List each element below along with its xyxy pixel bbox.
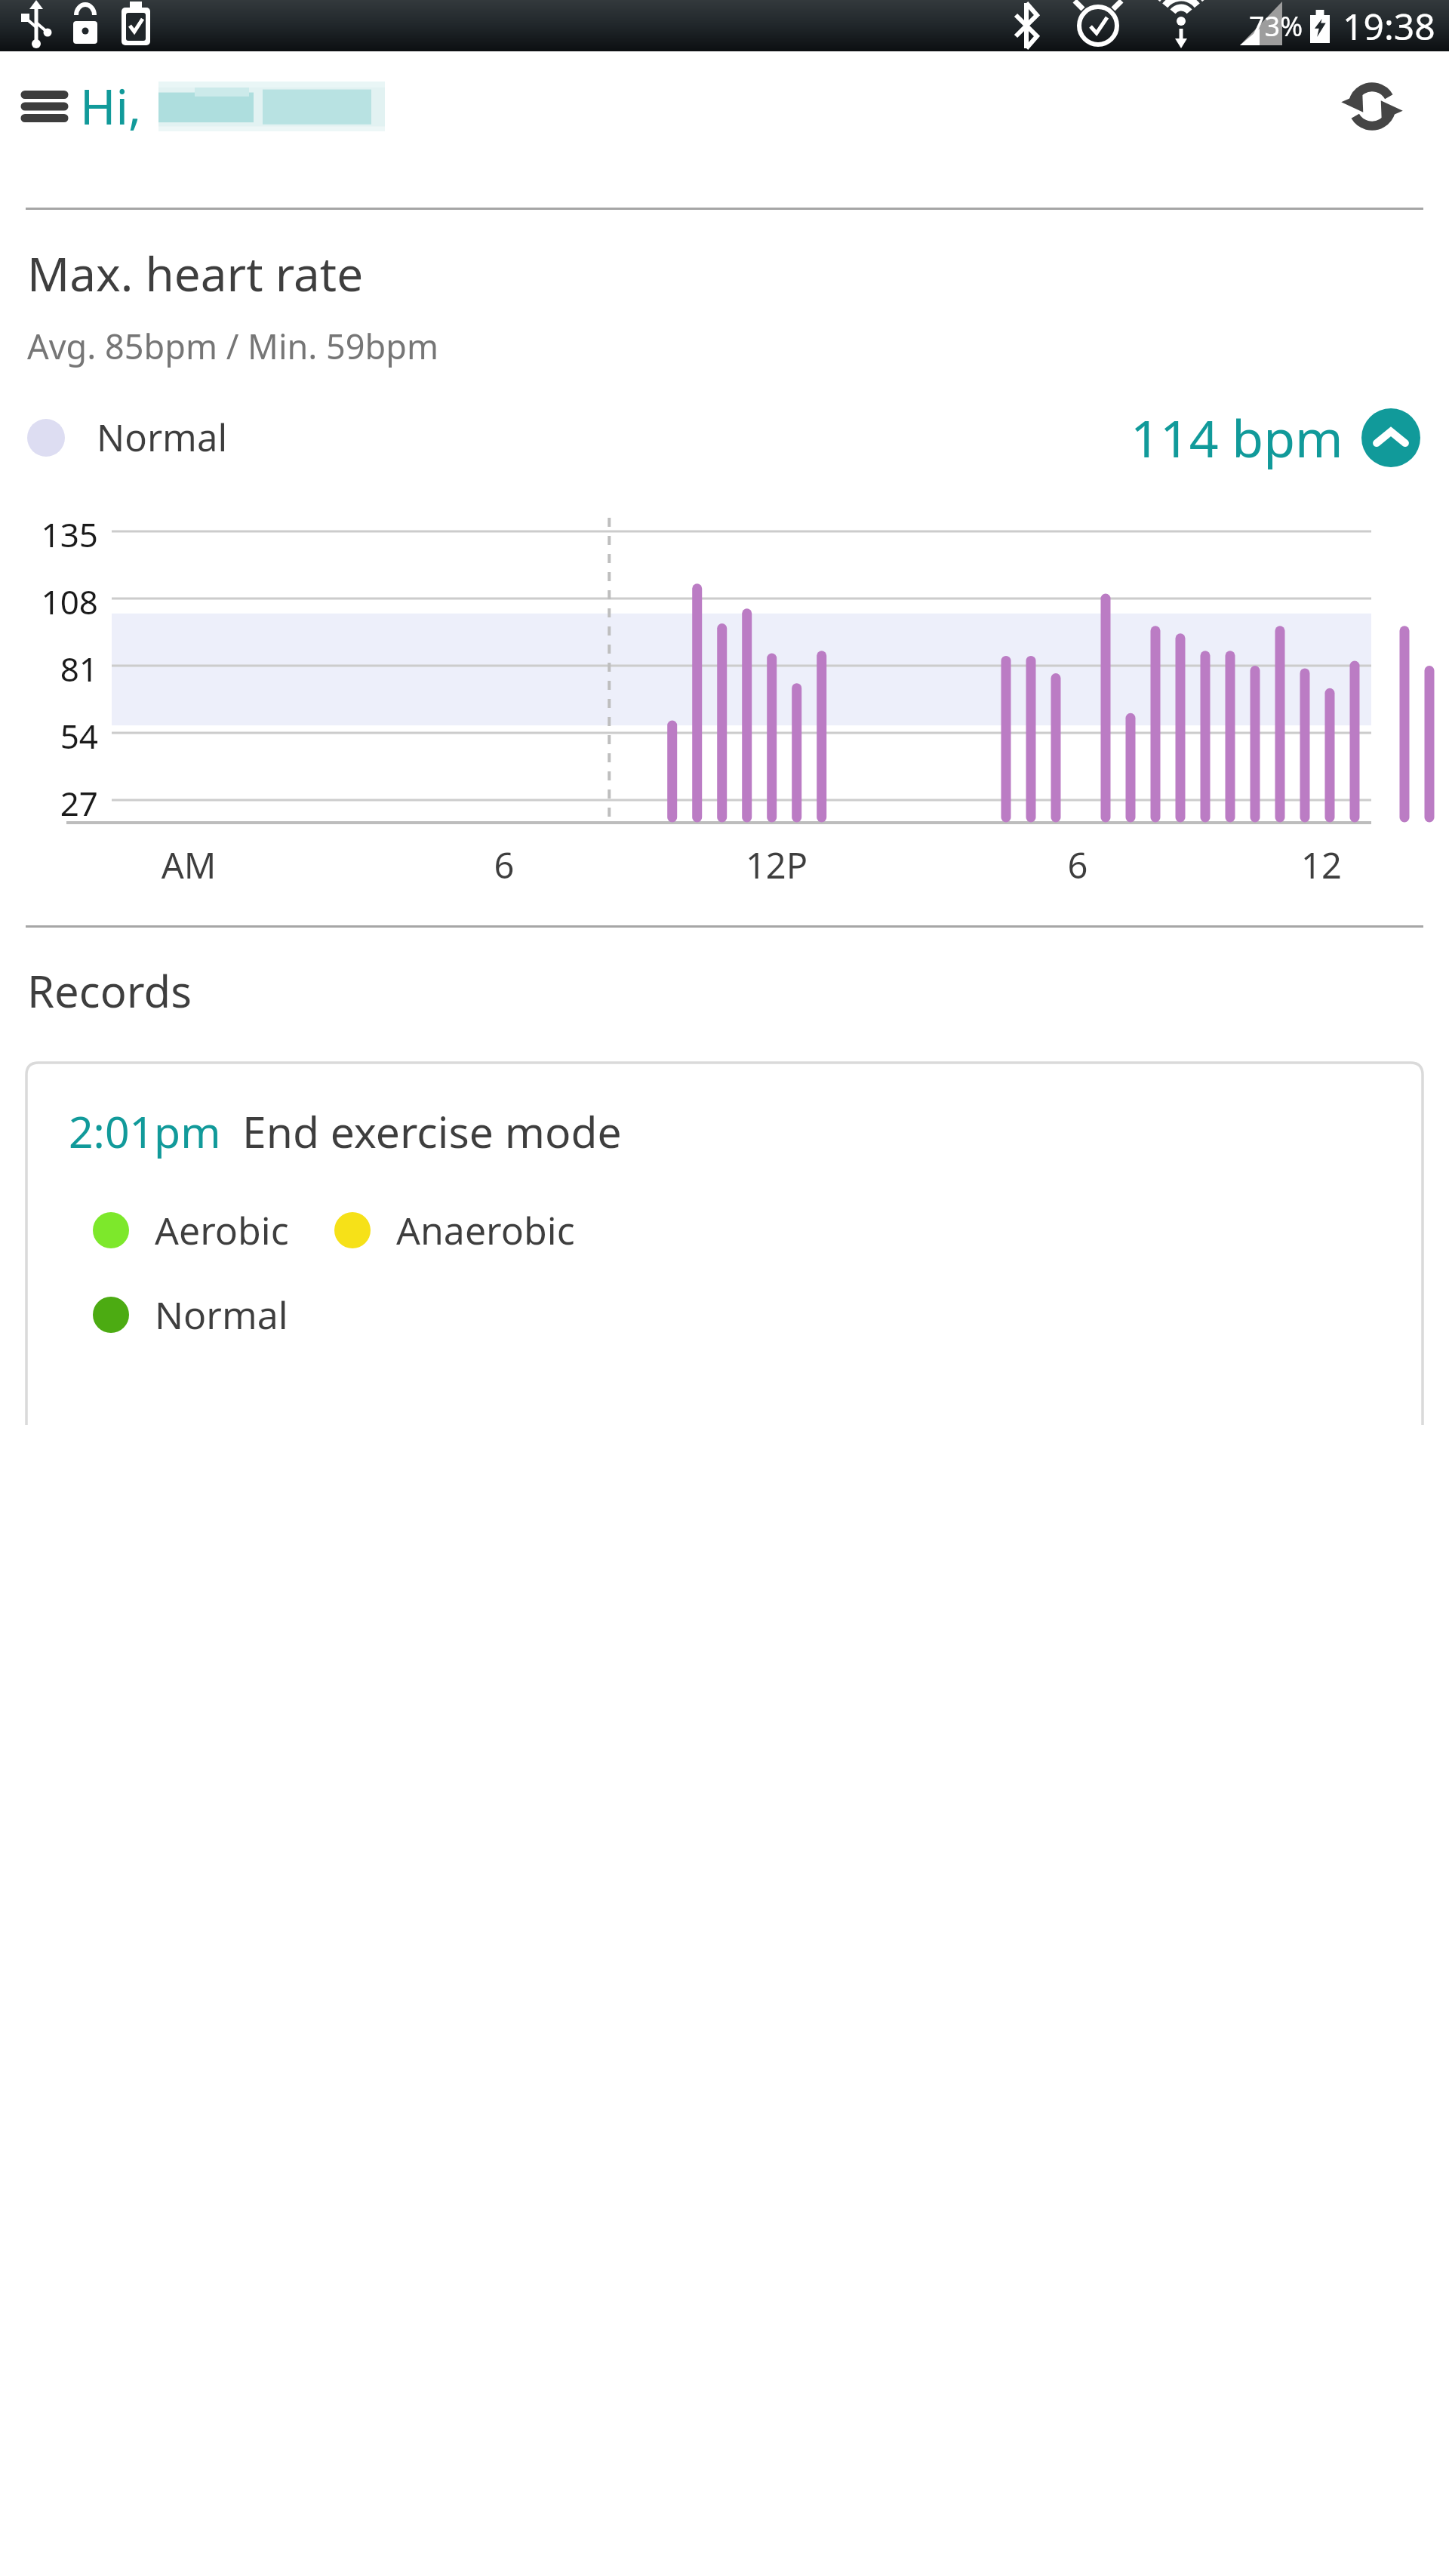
- staticText: Hi,: [80, 73, 142, 139]
- staticText: 81: [23, 646, 98, 691]
- staticText: Max. heart rate: [27, 242, 364, 305]
- staticText: Normal: [97, 412, 228, 463]
- staticText: 114 bpm: [1131, 402, 1343, 472]
- staticText: 135: [23, 512, 98, 557]
- button[interactable]: Menu: [15, 77, 74, 136]
- button[interactable]: 114 bpm: [1131, 402, 1420, 472]
- staticText: 12PM: [731, 841, 822, 892]
- button[interactable]: 2:01pm: [26, 1063, 1423, 1425]
- staticText: 108: [23, 579, 98, 624]
- staticText: 6: [459, 841, 549, 889]
- staticText: End exercise mode: [242, 1102, 622, 1161]
- staticText: Aerobic: [155, 1205, 289, 1256]
- staticText: 6: [1032, 841, 1123, 889]
- staticText: 2:01pm: [69, 1102, 221, 1161]
- staticText: Records: [27, 961, 192, 1020]
- other: Expand: [1361, 408, 1420, 467]
- staticText: 54: [23, 713, 98, 759]
- staticText: 27: [23, 780, 98, 826]
- staticText: Anaerobic: [396, 1205, 575, 1256]
- staticText: Normal: [155, 1289, 288, 1340]
- button[interactable]: Refresh: [1333, 67, 1411, 146]
- staticText: 12: [1276, 841, 1367, 889]
- staticText: AM: [143, 841, 234, 889]
- staticText: Avg. 85bpm / Min. 59bpm: [27, 323, 438, 369]
- staticText: 73%: [1249, 8, 1303, 45]
- staticText: 19:38: [1343, 2, 1435, 51]
